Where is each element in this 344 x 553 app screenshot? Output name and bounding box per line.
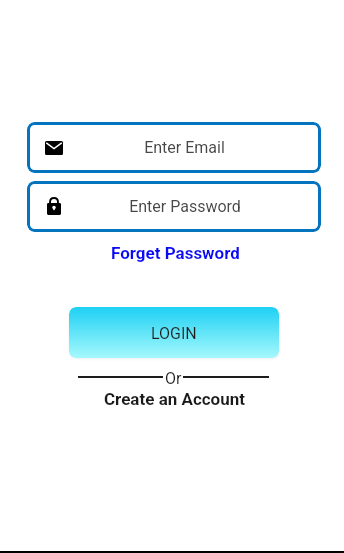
other: Password xyxy=(47,197,61,215)
staticText: Forget Password xyxy=(111,243,240,263)
staticText: Enter Password xyxy=(129,197,241,216)
staticText: Or xyxy=(165,369,182,388)
button[interactable]: LOGIN xyxy=(69,307,279,358)
button[interactable]: Create an Account xyxy=(98,387,252,411)
button[interactable]: Enter Password xyxy=(27,181,321,232)
staticText: LOGIN xyxy=(151,324,197,343)
other: Email xyxy=(45,141,63,155)
staticText: Create an Account xyxy=(104,389,246,409)
staticText: Enter Email xyxy=(144,138,225,157)
button[interactable]: Forget Password xyxy=(105,241,246,265)
button[interactable]: Enter Email xyxy=(27,122,321,173)
